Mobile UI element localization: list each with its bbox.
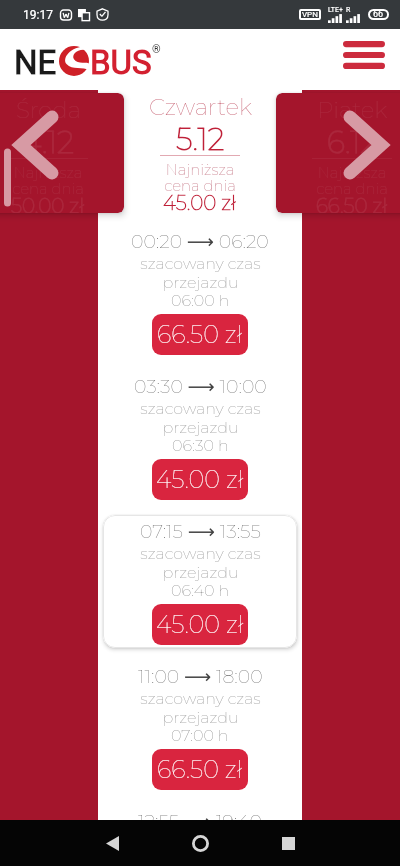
button[interactable]: Recent apps: [268, 823, 308, 863]
staticText: 06:00 h: [171, 291, 230, 311]
staticText: LTE+: [328, 6, 343, 14]
staticText: R: [346, 6, 351, 14]
button[interactable]: 11:00 ⟶ 18:00: [103, 660, 297, 793]
staticText: 11:00 ⟶ 18:00: [138, 665, 263, 688]
staticText: 07:15 ⟶ 13:55: [140, 520, 261, 543]
staticText: szacowany czas przejazdu: [140, 399, 261, 437]
staticText: 07:00 h: [171, 726, 229, 746]
staticText: 66.50 zł: [157, 755, 243, 784]
button[interactable]: Piątek: [276, 93, 400, 213]
staticText: 45.00 zł: [156, 465, 244, 494]
button[interactable]: 03:30 ⟶ 10:00: [103, 370, 297, 503]
staticText: 4.12: [22, 124, 74, 161]
button[interactable]: 12:55 ⟶ 19:40: [103, 805, 297, 866]
button[interactable]: 07:15 ⟶ 13:55: [103, 515, 297, 648]
staticText: 5.12: [176, 121, 225, 158]
staticText: 06:40 h: [171, 581, 230, 601]
staticText: 66.50 zł: [157, 320, 243, 349]
staticText: 12:55 ⟶ 19:40: [138, 810, 262, 833]
button[interactable]: 66.50 zł: [152, 749, 248, 790]
button[interactable]: Czwartek: [124, 90, 276, 213]
staticText: 19:17: [23, 8, 53, 22]
staticText: 66: [373, 9, 384, 20]
staticText: szacowany czas przejazdu: [140, 834, 261, 866]
staticText: 6.12: [327, 124, 378, 161]
staticText: Najniższa cena dnia: [12, 163, 84, 197]
staticText: Czwartek: [149, 93, 252, 121]
button[interactable]: Home: [180, 823, 220, 863]
staticText: Najniższa cena dnia: [164, 160, 236, 194]
staticText: 66.50 zł: [316, 194, 388, 213]
staticText: ®: [152, 43, 161, 56]
button[interactable]: Środa: [0, 93, 124, 213]
button[interactable]: 45.00 zł: [152, 604, 248, 645]
button[interactable]: Next day: [338, 100, 400, 210]
staticText: 03:30 ⟶ 10:00: [134, 375, 267, 398]
staticText: BUS: [90, 43, 152, 82]
button[interactable]: 45.00 zł: [152, 459, 248, 500]
staticText: Środa: [16, 96, 81, 124]
staticText: VPN: [302, 10, 318, 19]
staticText: Najniższa cena dnia: [316, 163, 388, 197]
button[interactable]: 00:20 ⟶ 06:20: [103, 225, 297, 358]
staticText: NE: [14, 43, 57, 82]
button[interactable]: Menu: [336, 27, 392, 83]
button[interactable]: Previous day: [0, 100, 62, 210]
button[interactable]: 66.50 zł: [152, 314, 248, 355]
button[interactable]: Back: [92, 823, 132, 863]
staticText: 06:30 h: [172, 436, 229, 456]
staticText: 45.00 zł: [156, 610, 244, 639]
staticText: 50.00 zł: [11, 194, 85, 213]
staticText: 00:20 ⟶ 06:20: [131, 230, 269, 253]
staticText: 45.00 zł: [163, 191, 237, 215]
staticText: Piątek: [317, 96, 388, 124]
staticText: szacowany czas przejazdu: [140, 689, 261, 727]
staticText: szacowany czas przejazdu: [140, 254, 261, 292]
staticText: szacowany czas przejazdu: [140, 544, 261, 582]
